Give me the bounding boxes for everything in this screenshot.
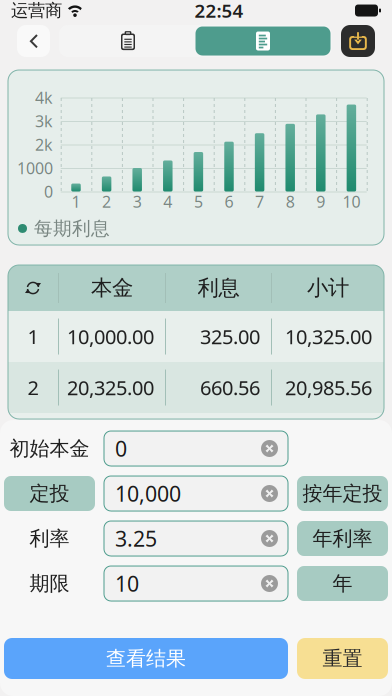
staticText: 年 bbox=[332, 571, 352, 596]
staticText: 5 bbox=[194, 191, 203, 212]
button[interactable]: Schedule table bbox=[60, 26, 195, 55]
staticText: 10,000 bbox=[115, 479, 181, 508]
staticText: 6 bbox=[224, 191, 233, 212]
staticText: 42,653.15 bbox=[285, 425, 372, 452]
button[interactable]: 查看结果 bbox=[4, 638, 288, 679]
staticText: 3 bbox=[133, 191, 142, 212]
staticText: 10 bbox=[342, 191, 360, 212]
staticText: 1 bbox=[71, 191, 80, 212]
staticText: 8 bbox=[286, 191, 295, 212]
button[interactable]: Clear bbox=[256, 522, 283, 555]
button[interactable]: Clear bbox=[256, 477, 283, 510]
button[interactable]: Export bbox=[341, 25, 375, 57]
staticText: 41,310.56 bbox=[67, 425, 154, 452]
staticText: 期限 bbox=[29, 571, 69, 596]
staticText: 本金 bbox=[91, 275, 133, 301]
staticText: 660.56 bbox=[200, 374, 260, 401]
staticText: 3.25 bbox=[115, 524, 157, 553]
button[interactable]: 年 bbox=[297, 566, 388, 601]
staticText: 2 bbox=[102, 191, 111, 212]
staticText: 7 bbox=[255, 191, 264, 212]
staticText: 2 bbox=[27, 374, 38, 401]
staticText: 运营商 bbox=[11, 0, 62, 21]
staticText: 3 bbox=[27, 425, 38, 452]
button[interactable]: Summary bbox=[195, 26, 330, 55]
button[interactable]: 按年定投 bbox=[297, 476, 388, 511]
staticText: 10,000.00 bbox=[67, 323, 154, 350]
staticText: 3k bbox=[35, 110, 53, 132]
staticText: 利率 bbox=[29, 526, 69, 551]
button[interactable]: Clear bbox=[256, 432, 283, 465]
staticText: 初始本金 bbox=[9, 436, 89, 461]
staticText: 325.00 bbox=[200, 323, 260, 350]
staticText: 定投 bbox=[29, 481, 69, 506]
button[interactable]: Clear bbox=[256, 567, 283, 600]
staticText: 10 bbox=[115, 569, 139, 598]
staticText: 20,985.56 bbox=[285, 374, 372, 401]
button[interactable]: 年利率 bbox=[297, 521, 388, 556]
staticText: 按年定投 bbox=[302, 481, 382, 506]
button[interactable]: 重置 bbox=[297, 638, 388, 679]
staticText: 年利率 bbox=[312, 526, 372, 551]
staticText: 4k bbox=[35, 87, 53, 108]
staticText: 9 bbox=[316, 191, 325, 212]
staticText: 重置 bbox=[322, 646, 362, 671]
staticText: 1,342.59 bbox=[184, 425, 260, 452]
staticText: 4 bbox=[163, 191, 172, 212]
staticText: 10,325.00 bbox=[285, 323, 372, 350]
staticText: 22:54 bbox=[194, 0, 243, 23]
staticText: 1000 bbox=[17, 157, 53, 179]
staticText: 小计 bbox=[307, 275, 349, 301]
staticText: 每期利息 bbox=[34, 217, 110, 240]
button[interactable]: Back bbox=[17, 25, 50, 57]
staticText: 1 bbox=[27, 323, 38, 350]
staticText: 20,325.00 bbox=[67, 374, 154, 401]
staticText: 利息 bbox=[197, 275, 239, 301]
button[interactable]: 定投 bbox=[4, 476, 95, 511]
staticText: 0 bbox=[115, 434, 127, 463]
staticText: 0 bbox=[44, 181, 53, 202]
staticText: 查看结果 bbox=[106, 646, 186, 671]
staticText: 2k bbox=[35, 134, 53, 155]
